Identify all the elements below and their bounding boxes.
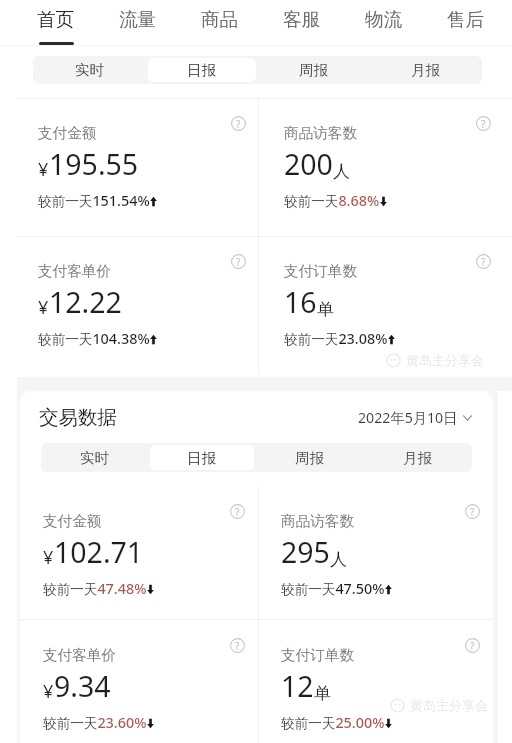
staticText: 较前一天8.68%: [284, 191, 380, 211]
staticText: 较前一天23.08%: [284, 329, 388, 349]
staticText: 人: [330, 549, 347, 570]
staticText: ¥: [43, 545, 54, 570]
button[interactable]: 支付订单数: [259, 620, 493, 743]
staticText: ?: [235, 639, 240, 653]
staticText: 售后: [447, 8, 485, 31]
staticText: 单: [314, 683, 331, 704]
staticText: 单: [317, 299, 334, 320]
staticText: 人: [333, 161, 350, 182]
button[interactable]: Help: [230, 504, 245, 519]
staticText: ?: [235, 505, 240, 519]
staticText: 较前一天151.54%: [38, 191, 150, 211]
button[interactable]: 支付订单数: [259, 237, 512, 374]
button[interactable]: Help: [476, 116, 491, 131]
staticText: 较前一天104.38%: [38, 329, 150, 349]
button[interactable]: 支付客单价: [0, 237, 258, 374]
button[interactable]: 实时: [43, 445, 146, 470]
button[interactable]: 商品访客数: [259, 486, 493, 619]
staticText: 月报: [403, 449, 433, 467]
button[interactable]: 周报: [260, 58, 368, 82]
button[interactable]: 日报: [148, 58, 256, 82]
staticText: 16: [284, 283, 317, 322]
button[interactable]: 支付金额: [20, 486, 258, 619]
button[interactable]: 实时: [35, 58, 144, 82]
button[interactable]: Help: [465, 638, 480, 653]
staticText: 流量: [119, 8, 157, 31]
staticText: ?: [470, 639, 475, 653]
staticText: 较前一天23.60%: [43, 713, 147, 733]
staticText: ¥: [38, 295, 49, 320]
button[interactable]: 2022年5月10日: [358, 408, 472, 427]
staticText: 客服: [283, 8, 321, 31]
button[interactable]: 商品: [179, 0, 261, 45]
staticText: 支付订单数: [281, 646, 354, 664]
button[interactable]: 商品访客数: [259, 99, 512, 236]
staticText: 较前一天25.00%: [281, 713, 385, 733]
staticText: 12.22: [49, 283, 122, 322]
staticText: 195.55: [49, 145, 139, 184]
staticText: 9.34: [54, 667, 111, 706]
staticText: 黄岛主分享会: [406, 352, 484, 368]
button[interactable]: 月报: [372, 58, 480, 82]
staticText: 200: [284, 145, 333, 184]
button[interactable]: Help: [476, 254, 491, 269]
staticText: 日报: [187, 61, 217, 79]
button[interactable]: 周报: [258, 445, 362, 470]
button[interactable]: 支付金额: [0, 99, 258, 236]
staticText: ?: [470, 505, 475, 519]
button[interactable]: 物流: [343, 0, 425, 45]
button[interactable]: Help: [231, 116, 246, 131]
staticText: 首页: [37, 8, 75, 31]
button[interactable]: 售后: [425, 0, 507, 45]
button[interactable]: Help: [465, 504, 480, 519]
staticText: 周报: [295, 449, 325, 467]
staticText: 2022年5月10日: [358, 408, 458, 427]
staticText: 实时: [80, 449, 110, 467]
staticText: 黄岛主分享会: [410, 697, 488, 713]
staticText: 295: [281, 533, 330, 572]
staticText: 交易数据: [39, 405, 117, 430]
button[interactable]: 首页: [15, 0, 97, 45]
staticText: 商品访客数: [284, 124, 357, 142]
staticText: ¥: [43, 679, 54, 704]
staticText: ¥: [38, 157, 49, 182]
staticText: 商品: [201, 8, 239, 31]
staticText: 较前一天47.48%: [43, 579, 147, 599]
staticText: ?: [481, 255, 486, 269]
staticText: ?: [236, 117, 241, 131]
button[interactable]: 月报: [366, 445, 470, 470]
staticText: 物流: [365, 8, 403, 31]
button[interactable]: Help: [231, 254, 246, 269]
staticText: 支付客单价: [38, 262, 111, 280]
staticText: 周报: [299, 61, 329, 79]
staticText: ?: [481, 117, 486, 131]
button[interactable]: Help: [230, 638, 245, 653]
staticText: 12: [281, 667, 314, 706]
button[interactable]: 流量: [97, 0, 179, 45]
staticText: 支付金额: [43, 512, 102, 530]
staticText: 支付订单数: [284, 262, 357, 280]
staticText: 月报: [411, 61, 441, 79]
staticText: 较前一天47.50%: [281, 579, 385, 599]
button[interactable]: 支付客单价: [20, 620, 258, 743]
staticText: 日报: [187, 449, 217, 467]
staticText: 支付客单价: [43, 646, 116, 664]
staticText: 102.71: [54, 533, 144, 572]
staticText: 实时: [75, 61, 105, 79]
staticText: 支付金额: [38, 124, 97, 142]
staticText: 商品访客数: [281, 512, 354, 530]
button[interactable]: 日报: [150, 445, 254, 470]
button[interactable]: 客服: [261, 0, 343, 45]
staticText: ?: [236, 255, 241, 269]
